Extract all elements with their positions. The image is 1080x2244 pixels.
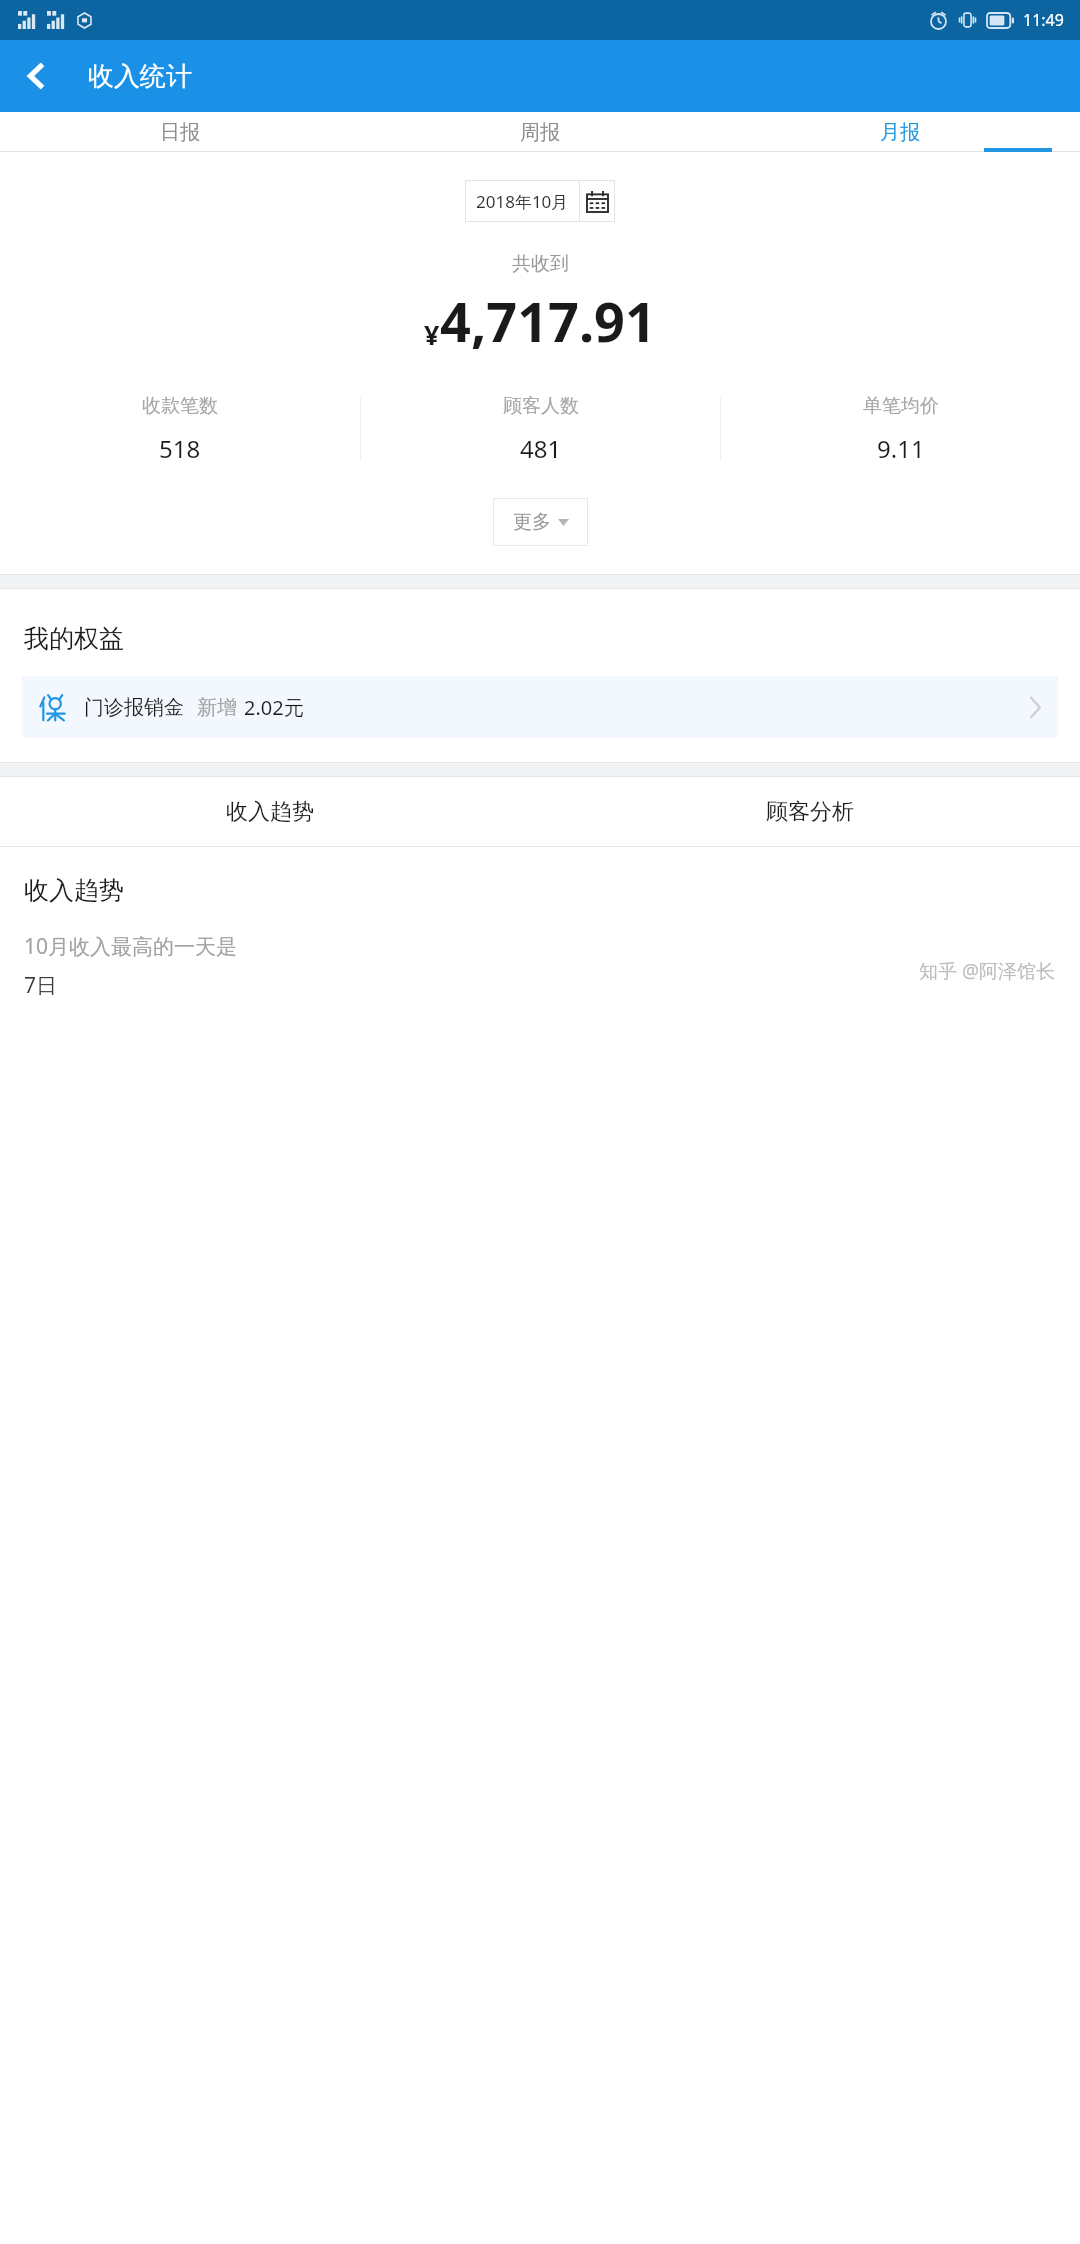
staticText: 518 [159, 432, 201, 465]
staticText: 门诊报销金 [84, 695, 184, 720]
staticText: 481 [520, 432, 562, 465]
staticText: 共收到 [512, 252, 569, 276]
staticText: 收入趋势 [24, 875, 124, 906]
staticText: 周报 [520, 120, 560, 145]
staticText: 单笔均价 [863, 394, 939, 418]
staticText: 顾客分析 [766, 798, 854, 826]
staticText: 2.02元 [244, 694, 304, 721]
button[interactable]: 顾客人数 [361, 386, 720, 472]
staticText: 11:49 [1023, 9, 1064, 31]
button[interactable]: 周报 [360, 112, 720, 152]
button[interactable]: 顾客分析 [540, 777, 1080, 846]
staticText: 收款笔数 [142, 394, 218, 418]
staticText: 10月收入最高的一天是 [24, 932, 238, 961]
button[interactable]: 日报 [0, 112, 360, 152]
staticText: 4,717.91 [440, 284, 656, 358]
button[interactable]: Back [8, 48, 64, 104]
staticText: 2018年10月 [476, 190, 569, 213]
staticText: 月报 [880, 120, 920, 145]
button[interactable]: 收款笔数 [0, 386, 360, 472]
button[interactable]: 单笔均价 [721, 386, 1080, 472]
staticText: 知乎 @阿泽馆长 [919, 958, 1056, 984]
button[interactable]: 2018年10月 [465, 180, 615, 222]
staticText: 9.11 [877, 432, 925, 465]
staticText: 新增 [197, 695, 237, 720]
button[interactable]: 月报 [720, 112, 1080, 152]
staticText: 7日 [24, 971, 58, 1000]
staticText: 顾客人数 [503, 394, 579, 418]
staticText: 日报 [160, 120, 200, 145]
staticText: 更多 [513, 510, 551, 534]
button[interactable]: 收入趋势 [0, 777, 540, 846]
staticText: 收入趋势 [226, 798, 314, 826]
button[interactable]: 更多 [493, 498, 588, 546]
staticText: 收入统计 [88, 60, 192, 93]
button[interactable]: 门诊报销金 [22, 676, 1058, 738]
staticText: 我的权益 [24, 623, 124, 654]
staticText: ¥ [424, 316, 440, 353]
